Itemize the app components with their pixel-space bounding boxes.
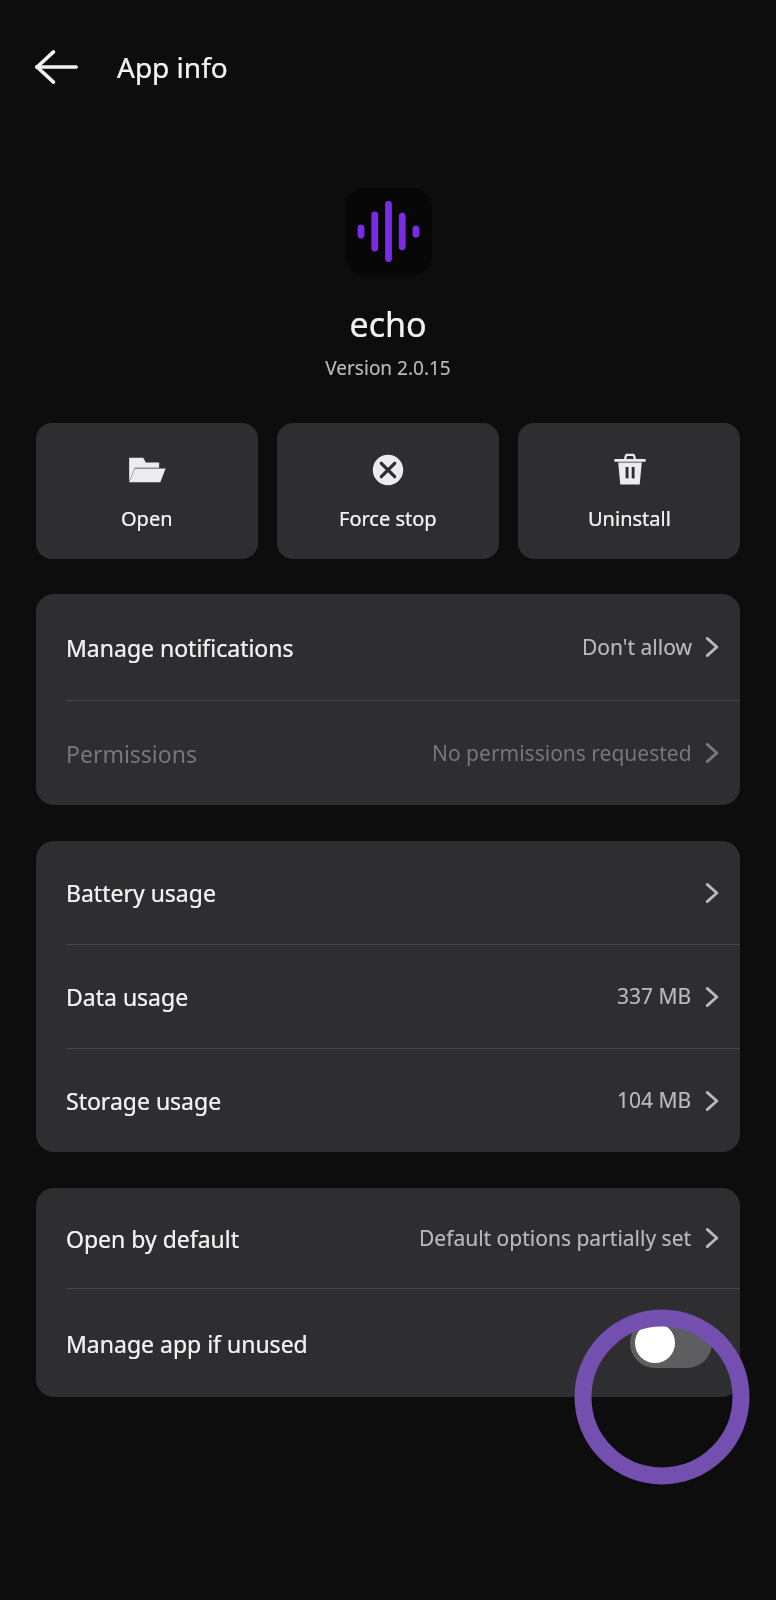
staticText: Permissions bbox=[66, 738, 197, 769]
staticText: Storage usage bbox=[66, 1085, 222, 1116]
button[interactable]: Permissions bbox=[36, 701, 740, 805]
button[interactable]: Manage app if unused bbox=[36, 1289, 740, 1397]
button[interactable]: Storage usage bbox=[36, 1049, 740, 1152]
staticText: Uninstall bbox=[588, 505, 671, 532]
staticText: Battery usage bbox=[66, 877, 216, 908]
button[interactable]: Open by default bbox=[36, 1188, 740, 1288]
staticText: Open bbox=[121, 505, 173, 532]
button[interactable]: Uninstall bbox=[518, 423, 740, 559]
button[interactable]: Manage app if unused toggle bbox=[630, 1318, 712, 1368]
staticText: App info bbox=[117, 48, 228, 86]
button[interactable]: Back bbox=[22, 33, 90, 101]
staticText: Force stop bbox=[339, 505, 437, 532]
staticText: Version 2.0.15 bbox=[325, 355, 451, 381]
staticText: echo bbox=[349, 301, 427, 347]
button[interactable]: Manage notifications bbox=[36, 594, 740, 700]
button[interactable]: Force stop bbox=[277, 423, 499, 559]
staticText: 337 MB bbox=[617, 982, 692, 1011]
staticText: 104 MB bbox=[617, 1086, 692, 1115]
button[interactable]: Data usage bbox=[36, 945, 740, 1048]
staticText: Manage app if unused bbox=[66, 1328, 308, 1359]
button[interactable]: Open bbox=[36, 423, 258, 559]
button[interactable]: Battery usage bbox=[36, 841, 740, 944]
staticText: Data usage bbox=[66, 981, 189, 1012]
staticText: Manage notifications bbox=[66, 632, 294, 663]
staticText: Don't allow bbox=[582, 633, 692, 662]
staticText: Open by default bbox=[66, 1223, 240, 1254]
staticText: Default options partially set bbox=[419, 1224, 692, 1253]
staticText: No permissions requested bbox=[432, 739, 692, 768]
